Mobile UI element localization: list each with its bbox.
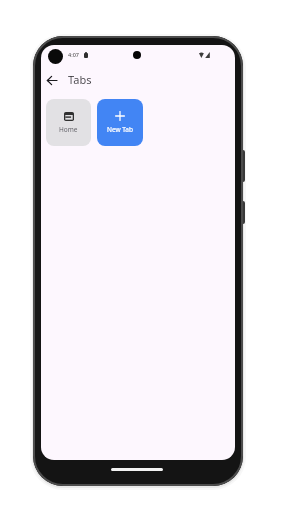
button[interactable]: [41, 71, 63, 89]
staticText: New Tab: [107, 125, 134, 134]
staticText: 4:07: [68, 51, 79, 58]
button[interactable]: Home: [46, 99, 91, 146]
button[interactable]: New Tab: [97, 99, 143, 146]
staticText: Tabs: [68, 72, 92, 87]
staticText: Home: [59, 125, 78, 134]
